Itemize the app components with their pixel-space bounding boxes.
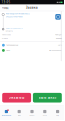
staticText: Тент, 20 т [55, 34, 62, 36]
staticText: Ещё [56, 115, 59, 116]
staticText: Поиск [29, 115, 34, 116]
staticText: Ставка [2, 38, 8, 39]
button[interactable]: Show on map [54, 12, 62, 21]
staticText: Тип перевозки [6, 44, 18, 46]
button[interactable]: Отказаться [2, 93, 31, 102]
button[interactable]: Мои [13, 105, 26, 120]
staticText: Авто [58, 44, 62, 46]
staticText: Тип кузова [2, 34, 11, 36]
button[interactable]: Чаты [38, 105, 51, 120]
staticText: Металлопрокат [49, 49, 62, 51]
staticText: Взять заказ [39, 96, 56, 99]
staticText: Без даты [6, 30, 13, 32]
button[interactable]: Ещё [51, 105, 64, 120]
staticText: Мои [18, 115, 21, 116]
staticText: Новгородская 1-я ул, Москва, 12 [6, 13, 30, 15]
staticText: 13:05 [1, 0, 10, 4]
button[interactable]: Поиск [26, 105, 38, 120]
staticText: 8 Марта ул, Иваново, 15 [6, 27, 23, 29]
staticText: Назад [2, 6, 9, 9]
staticText: Заявка [26, 6, 38, 9]
button[interactable]: Все заказы [0, 105, 13, 120]
button[interactable]: Взять заказ [33, 93, 62, 102]
staticText: Все заказы [2, 115, 11, 116]
staticText: 35 000 ₽ [56, 38, 62, 39]
staticText: 24.02.2021 04:30 — 08:00 [6, 16, 23, 18]
staticText: Груз [6, 49, 10, 51]
staticText: Отказаться [9, 96, 25, 99]
staticText: Чаты [43, 115, 47, 116]
button[interactable]: Back [0, 5, 11, 11]
